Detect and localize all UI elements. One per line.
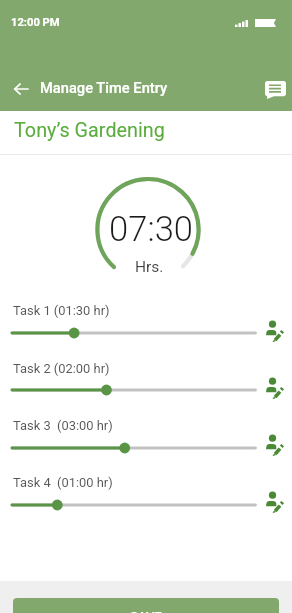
button[interactable]: Edit assignee <box>265 434 287 458</box>
staticText: 12:00 PM <box>11 16 60 29</box>
button[interactable]: Task 4 (01:00 hr) <box>0 494 292 516</box>
staticText: Manage Time Entry <box>40 79 168 96</box>
button[interactable]: Messages <box>259 74 291 106</box>
button[interactable]: Task 1 (01:30 hr) <box>0 322 292 344</box>
staticText: Task 4 (01:00 hr) <box>13 475 113 490</box>
staticText: SAVE <box>130 609 162 613</box>
staticText: Hrs. <box>135 258 164 276</box>
staticText: Task 1 (01:30 hr) <box>13 303 110 318</box>
button[interactable]: Task 3 (03:00 hr) <box>0 437 292 459</box>
button[interactable]: Task 2 (02:00 hr) <box>0 379 292 401</box>
staticText: Task 3 (03:00 hr) <box>13 418 113 433</box>
button[interactable]: Edit assignee <box>265 491 287 515</box>
staticText: Tony’s Gardening <box>14 119 165 142</box>
staticText: Task 2 (02:00 hr) <box>13 361 110 376</box>
staticText: 07:30 <box>109 209 194 250</box>
button[interactable]: Back <box>6 74 36 104</box>
button[interactable]: Edit assignee <box>265 320 287 344</box>
button[interactable]: SAVE <box>13 598 279 613</box>
button[interactable]: Edit assignee <box>265 377 287 401</box>
